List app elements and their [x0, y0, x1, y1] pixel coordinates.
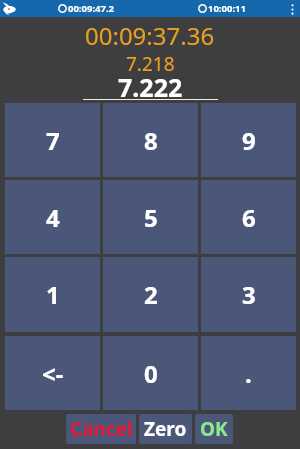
button[interactable]: 4: [5, 180, 100, 254]
staticText: 3: [242, 278, 256, 311]
staticText: 7: [46, 124, 60, 157]
button[interactable]: Cancel: [66, 414, 136, 444]
staticText: 00:09:37.36: [85, 19, 215, 52]
button[interactable]: More options: [284, 1, 300, 17]
button[interactable]: 9: [201, 103, 296, 177]
staticText: 00:09:47.2: [68, 2, 115, 15]
button[interactable]: 0: [103, 336, 198, 410]
button[interactable]: 7: [5, 103, 100, 177]
button[interactable]: OK: [195, 414, 233, 444]
staticText: OK: [200, 416, 228, 442]
button[interactable]: 8: [103, 103, 198, 177]
button[interactable]: Zero: [139, 414, 192, 444]
staticText: 7.218: [126, 51, 175, 77]
other: App icon: [2, 1, 17, 15]
button[interactable]: 2: [103, 257, 198, 332]
staticText: 9: [242, 124, 256, 157]
staticText: 7.222: [118, 70, 183, 104]
staticText: 0: [144, 357, 158, 390]
button[interactable]: <-: [5, 336, 100, 410]
staticText: .: [245, 357, 252, 390]
staticText: Zero: [144, 416, 187, 442]
staticText: 10:00:11: [208, 2, 246, 15]
button[interactable]: .: [201, 336, 296, 410]
staticText: 6: [242, 201, 256, 234]
staticText: <-: [42, 357, 64, 390]
button[interactable]: 1: [5, 257, 100, 332]
staticText: 4: [46, 201, 60, 234]
button[interactable]: 6: [201, 180, 296, 254]
staticText: 1: [46, 278, 60, 311]
staticText: Cancel: [70, 416, 133, 442]
staticText: 2: [144, 278, 158, 311]
button[interactable]: 5: [103, 180, 198, 254]
button[interactable]: 3: [201, 257, 296, 332]
staticText: 5: [144, 201, 158, 234]
staticText: 8: [144, 124, 158, 157]
